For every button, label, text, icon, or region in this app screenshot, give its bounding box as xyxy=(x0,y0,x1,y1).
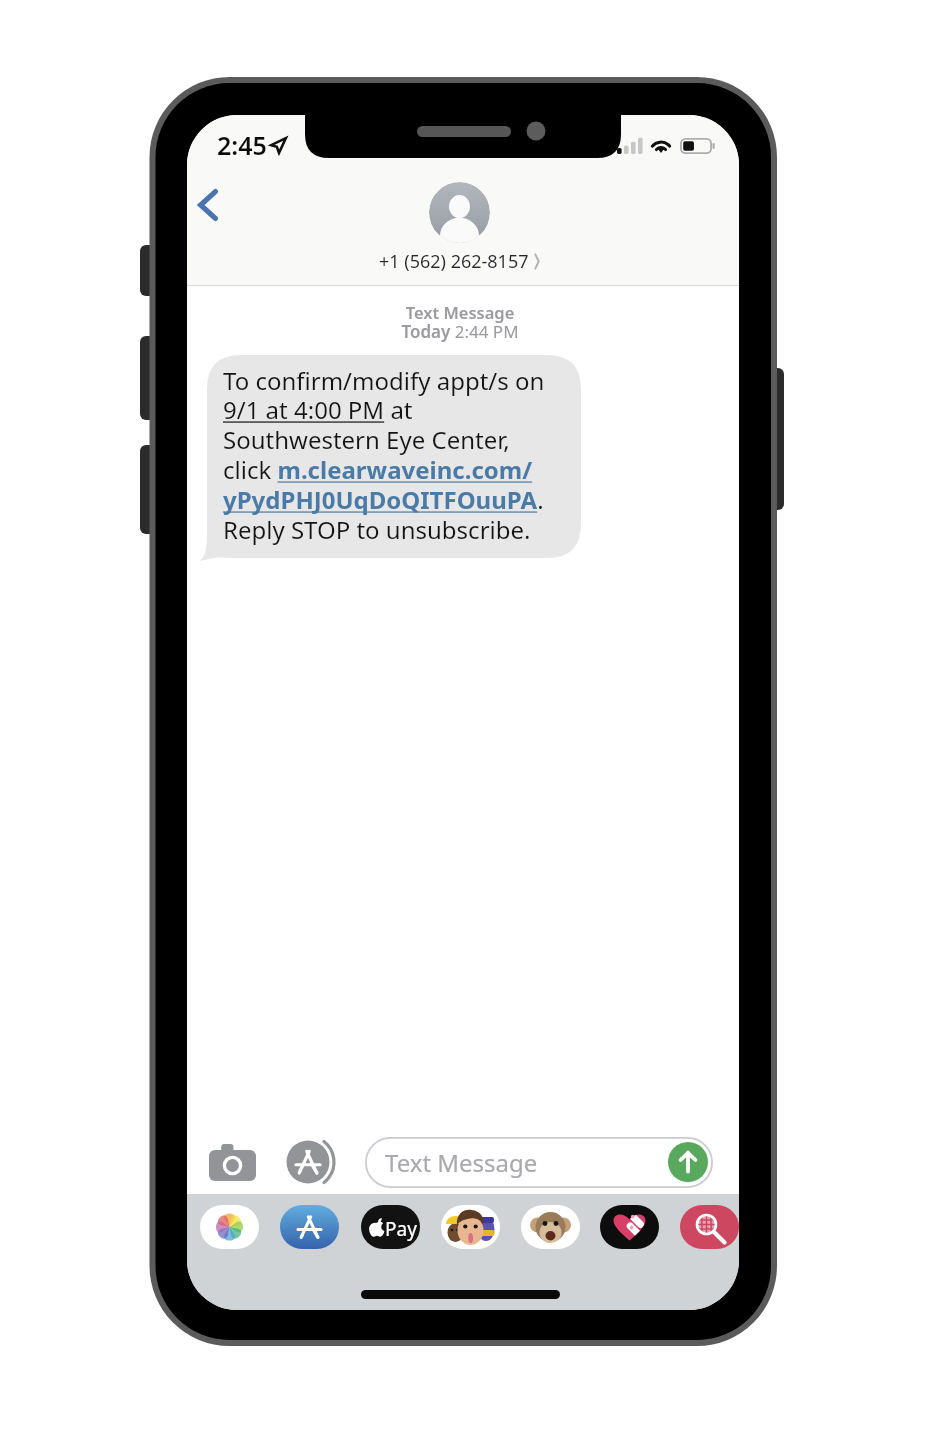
staticText: Today 2:44 PM xyxy=(187,320,736,343)
button[interactable]: To confirm/modify appt/s on 9/1 at 4:00 … xyxy=(197,355,581,564)
staticText: +1 (562) 262-8157 xyxy=(379,249,529,274)
button[interactable]: Memoji xyxy=(441,1205,500,1249)
button[interactable]: Text Message xyxy=(365,1137,713,1188)
button[interactable]: Camera xyxy=(205,1137,259,1187)
button[interactable]: Image Search xyxy=(680,1205,739,1249)
staticText: Pay xyxy=(385,1216,417,1242)
staticText: To confirm/modify appt/s on 9/1 at 4:00 … xyxy=(223,364,545,546)
button[interactable]: Animoji xyxy=(521,1205,580,1249)
staticText: Text Message xyxy=(187,301,736,323)
button[interactable]: Health xyxy=(600,1205,659,1249)
button[interactable]: Apple Pay xyxy=(361,1205,420,1249)
staticText: 2:45 xyxy=(217,128,267,162)
button[interactable]: Send xyxy=(668,1142,708,1182)
staticText: Text Message xyxy=(385,1146,538,1179)
button[interactable]: Back xyxy=(190,182,236,234)
button[interactable]: App Store xyxy=(280,1205,339,1249)
button[interactable]: App Store xyxy=(283,1135,337,1189)
button[interactable]: Photos xyxy=(200,1205,259,1249)
button[interactable]: +1 (562) 262-8157 xyxy=(379,182,540,274)
